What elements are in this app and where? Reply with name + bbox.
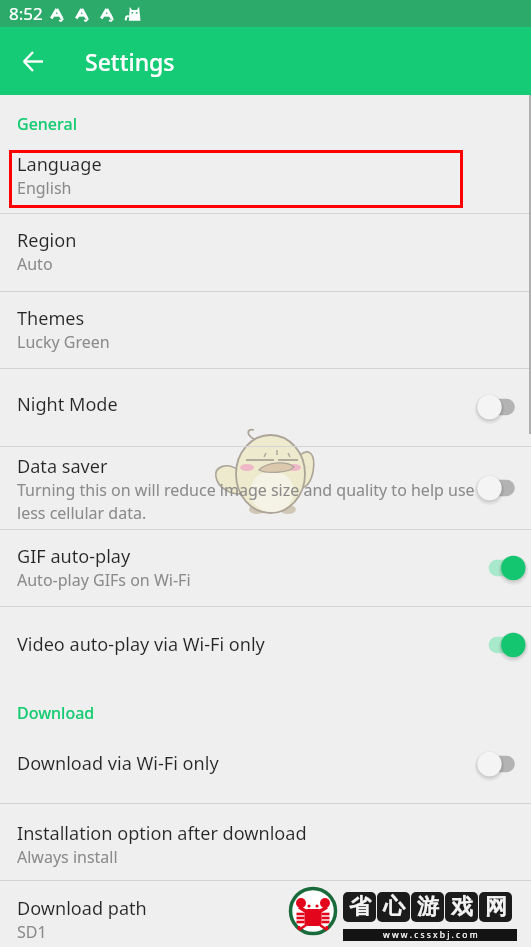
button[interactable]: Night Mode: [0, 369, 531, 446]
staticText: Turning this on will reduce image size a…: [17, 479, 491, 524]
button[interactable]: Installation option after download: [0, 804, 531, 880]
staticText: 省: [349, 893, 371, 921]
button[interactable]: Themes: [0, 292, 531, 368]
staticText: GIF auto-play: [17, 544, 131, 569]
button[interactable]: Data saver: [472, 465, 531, 511]
staticText: English: [17, 177, 72, 199]
staticText: Data saver: [17, 454, 108, 479]
staticText: Download: [17, 702, 95, 724]
button[interactable]: Video auto-play via Wi-Fi only: [0, 607, 531, 684]
staticText: Installation option after download: [17, 821, 307, 846]
button[interactable]: Download via Wi-Fi only: [472, 741, 531, 787]
staticText: SD1: [17, 921, 47, 943]
button[interactable]: Night Mode: [472, 384, 531, 430]
staticText: 8:52: [9, 2, 43, 25]
staticText: Themes: [17, 306, 85, 331]
button[interactable]: Download path: [0, 881, 531, 947]
staticText: 游: [417, 893, 439, 921]
staticText: Auto: [17, 253, 53, 275]
staticText: Night Mode: [17, 392, 118, 417]
staticText: Download path: [17, 896, 147, 921]
staticText: w w w . c s s x b j . c o m: [383, 929, 478, 941]
button[interactable]: Data saver: [0, 447, 531, 529]
staticText: Lucky Green: [17, 331, 110, 353]
staticText: Auto-play GIFs on Wi-Fi: [17, 569, 191, 591]
staticText: 心: [383, 893, 405, 921]
button[interactable]: Back: [9, 37, 57, 85]
button[interactable]: Region: [0, 214, 531, 291]
button[interactable]: GIF auto-play: [472, 545, 531, 591]
staticText: Download via Wi-Fi only: [17, 751, 219, 776]
button[interactable]: Video auto-play via Wi-Fi only: [472, 622, 531, 668]
staticText: Settings: [85, 46, 175, 77]
staticText: 网: [485, 893, 507, 921]
button[interactable]: Download via Wi-Fi only: [0, 726, 531, 803]
staticText: Region: [17, 228, 77, 253]
staticText: General: [17, 113, 77, 135]
staticText: Video auto-play via Wi-Fi only: [17, 632, 265, 657]
button[interactable]: GIF auto-play: [0, 530, 531, 606]
staticText: 戏: [451, 893, 473, 921]
staticText: Language: [17, 152, 102, 177]
staticText: Always install: [17, 846, 118, 868]
button[interactable]: Language: [0, 145, 531, 213]
